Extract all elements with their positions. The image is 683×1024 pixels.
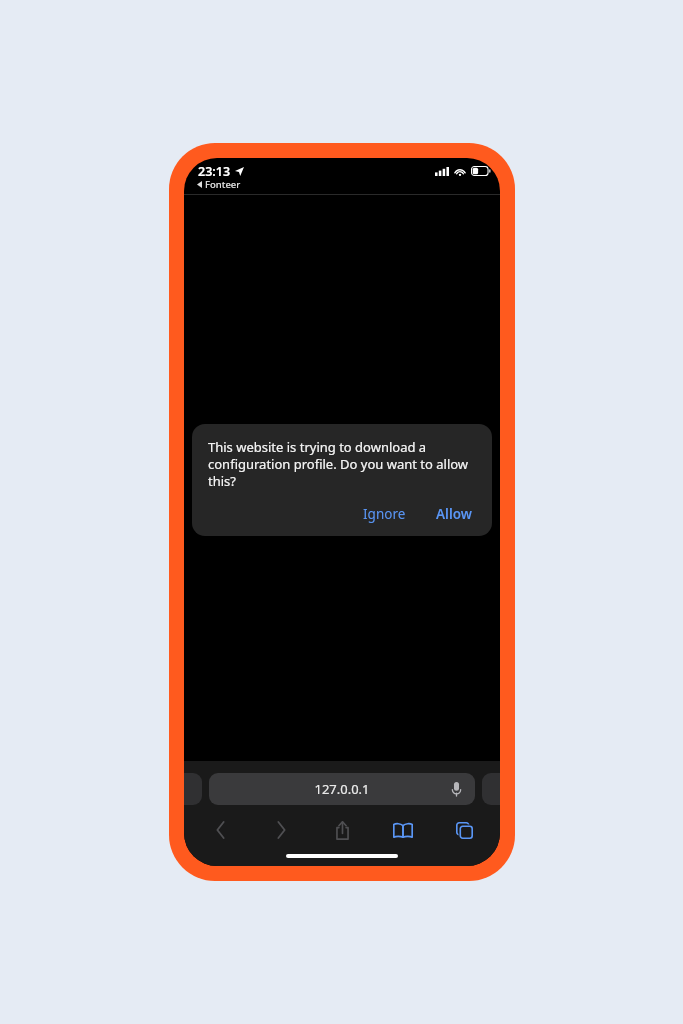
staticText: 23:13	[198, 163, 231, 180]
button[interactable]: Voice search	[446, 779, 466, 799]
staticText: Ignore	[363, 505, 406, 523]
button[interactable]: 127.0.0.1	[209, 773, 475, 805]
button[interactable]: Back	[198, 813, 242, 847]
staticText: Fonteer	[205, 178, 241, 191]
button[interactable]: Allow	[430, 502, 478, 526]
button[interactable]: Bookmarks	[381, 813, 425, 847]
button[interactable]: Fonteer	[197, 178, 241, 191]
button[interactable]: Tabs	[442, 813, 486, 847]
staticText: This website is trying to download a con…	[208, 438, 478, 490]
staticText: Allow	[436, 505, 472, 523]
button[interactable]: Forward	[259, 813, 303, 847]
button[interactable]: Ignore	[357, 502, 412, 526]
staticText: 127.0.0.1	[314, 780, 370, 798]
button[interactable]: Share	[320, 813, 364, 847]
